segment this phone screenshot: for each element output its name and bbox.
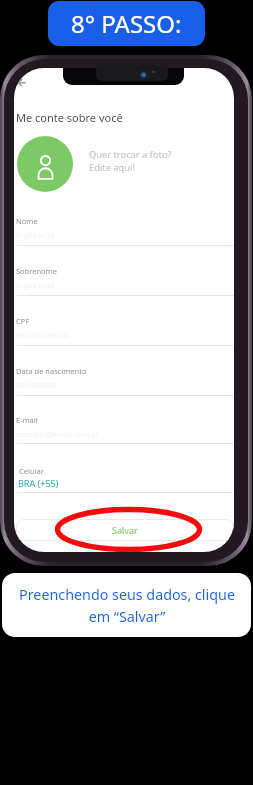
staticText: CPF bbox=[16, 316, 30, 326]
staticText: exemplo@email.com.br bbox=[16, 429, 100, 439]
button[interactable]: Preenchendo seus dados, clique em “Salva… bbox=[2, 573, 251, 637]
staticText: Digite aqui bbox=[16, 230, 55, 240]
staticText: Preenchendo seus dados, clique em “Salva… bbox=[19, 585, 235, 626]
button[interactable]: Voltar bbox=[14, 74, 32, 93]
button[interactable]: 8° PASSO: bbox=[48, 1, 205, 46]
staticText: Celular bbox=[19, 466, 44, 476]
button[interactable]: Salvar bbox=[16, 519, 234, 541]
staticText: Digite aqui bbox=[16, 280, 55, 290]
staticText: E-mail bbox=[16, 415, 38, 425]
staticText: Me conte sobre você bbox=[16, 110, 123, 125]
staticText: Quer trocar a foto? bbox=[89, 148, 172, 161]
staticText: 000.000.000-00 bbox=[16, 330, 70, 340]
staticText: Data de nascimento bbox=[16, 366, 87, 376]
staticText: Salvar bbox=[112, 524, 138, 536]
button[interactable]: Trocar foto bbox=[17, 136, 73, 192]
staticText: BRA (+55) bbox=[18, 477, 59, 489]
staticText: Sobrenome bbox=[16, 266, 57, 276]
staticText: 00/00/0000 bbox=[16, 380, 56, 390]
staticText: Nome bbox=[16, 216, 38, 226]
staticText: 8° PASSO: bbox=[71, 7, 182, 40]
staticText: Edite aqui! bbox=[89, 161, 135, 174]
